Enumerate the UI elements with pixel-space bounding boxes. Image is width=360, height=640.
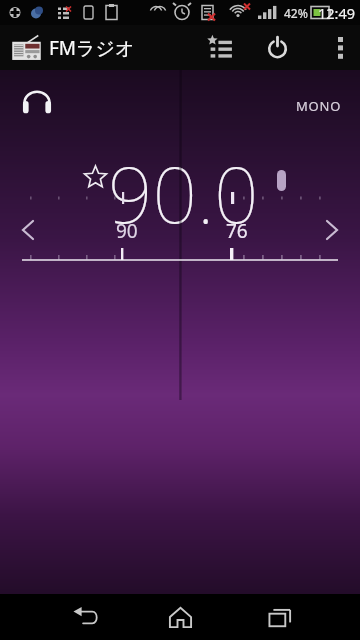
button[interactable]: 90 (108, 218, 146, 244)
staticText: 12:49 (318, 3, 356, 23)
button[interactable]: Next station (314, 212, 352, 250)
staticText: 90 (116, 218, 138, 244)
button[interactable]: Headphones (18, 86, 56, 122)
button[interactable]: Presets (198, 25, 244, 70)
button[interactable]: 90.0 (108, 140, 259, 246)
button[interactable]: Power (254, 25, 300, 70)
button[interactable]: Home (155, 594, 205, 640)
button[interactable]: Back (60, 594, 110, 640)
staticText: MONO (296, 97, 342, 115)
button[interactable]: Recent apps (255, 594, 305, 640)
button[interactable]: Add to favourites (83, 165, 108, 190)
button[interactable]: More options (320, 25, 360, 70)
staticText: 76 (226, 218, 248, 244)
button[interactable]: FMラジオ (0, 25, 135, 70)
button[interactable]: 76 (218, 218, 256, 244)
staticText: FMラジオ (49, 35, 135, 61)
button[interactable]: Previous station (10, 212, 48, 250)
staticText: 90.0 (108, 140, 259, 246)
staticText: 42% (284, 5, 308, 21)
